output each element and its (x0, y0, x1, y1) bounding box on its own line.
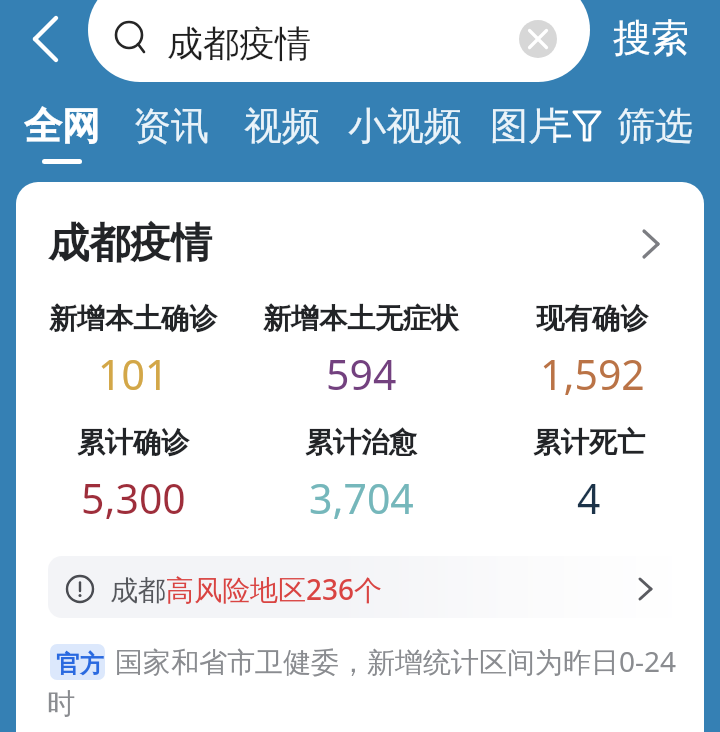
staticText: 图片 (490, 102, 566, 150)
staticText: 时 (47, 686, 75, 721)
staticText: 新增本土确诊 (49, 301, 217, 336)
staticText: 全网 (24, 102, 100, 150)
staticText: 3,704 (309, 470, 414, 526)
staticText: 筛选 (617, 102, 693, 150)
staticText: 官方 (56, 649, 104, 679)
button[interactable]: 成都高风险地区236个 (48, 556, 690, 618)
staticText: 累计治愈 (305, 425, 417, 460)
other: Search (112, 20, 152, 60)
staticText: 视频 (244, 102, 320, 150)
button[interactable]: 全网 (14, 102, 110, 164)
button[interactable]: Back (12, 10, 72, 70)
staticText: 成都疫情 (167, 21, 311, 66)
staticText: 1,592 (540, 346, 645, 402)
staticText: 4 (577, 470, 601, 526)
button[interactable] (88, 0, 590, 82)
staticText: 成都疫情 (48, 218, 212, 270)
button[interactable]: Clear text (518, 19, 558, 59)
button[interactable]: Filter (552, 106, 604, 146)
staticText: 5,300 (81, 470, 186, 526)
staticText: 搜索 (613, 14, 689, 62)
staticText: 成都高风险地区236个 (110, 570, 383, 608)
button[interactable]: 视频 (234, 102, 330, 150)
button[interactable]: 小视频 (338, 102, 472, 150)
staticText: 国家和省市卫健委，新增统计区间为昨日0-24 (115, 642, 677, 680)
staticText: 新增本土无症状 (263, 301, 459, 336)
button[interactable]: 成都疫情 (32, 206, 688, 274)
staticText: 累计确诊 (77, 425, 189, 460)
staticText: 小视频 (348, 102, 462, 150)
button[interactable]: 图片 (480, 102, 576, 150)
staticText: 资讯 (133, 102, 209, 150)
staticText: 现有确诊 (536, 301, 648, 336)
button[interactable]: 资讯 (123, 102, 219, 150)
button[interactable]: 筛选 (607, 102, 703, 150)
staticText: 594 (326, 346, 397, 402)
staticText: 累计死亡 (533, 425, 645, 460)
button[interactable]: 搜索 (613, 14, 689, 62)
staticText: 101 (98, 346, 169, 402)
